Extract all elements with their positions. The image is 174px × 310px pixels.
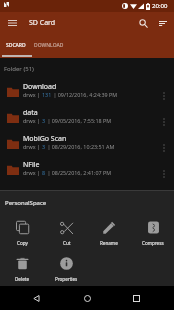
staticText: 3 xyxy=(42,143,46,150)
staticText: Copy xyxy=(17,240,28,246)
button[interactable]: Search xyxy=(134,14,152,32)
staticText: | 09/12/2016, 4:24:39 PM xyxy=(52,91,118,98)
staticText: Properties xyxy=(55,276,78,282)
staticText: Delete xyxy=(15,276,29,282)
button[interactable]: Copy xyxy=(0,221,44,253)
button[interactable]: Open navigation drawer xyxy=(3,14,21,32)
staticText: Download xyxy=(23,82,57,92)
button[interactable]: Recent apps xyxy=(126,288,146,308)
staticText: drwx | xyxy=(23,169,42,176)
staticText: Compress xyxy=(142,240,164,246)
button[interactable]: More options xyxy=(157,114,170,129)
staticText: SD Card xyxy=(29,18,56,28)
staticText: 131 xyxy=(42,91,52,98)
staticText: SDCARD xyxy=(6,42,26,49)
button[interactable]: Sort xyxy=(154,14,172,32)
button[interactable]: More options xyxy=(157,88,170,103)
button[interactable]: Cut xyxy=(44,221,88,253)
button[interactable]: Home xyxy=(77,288,97,308)
button[interactable]: More options xyxy=(157,166,170,181)
staticText: | 09/05/2016, 7:55:18 PM xyxy=(46,117,112,124)
button[interactable]: Properties xyxy=(44,257,88,289)
button[interactable]: MobiGo Scan xyxy=(0,131,174,157)
staticText: PersonalSpace xyxy=(5,199,47,207)
button[interactable]: NFile xyxy=(0,157,174,183)
staticText: | 08/25/2016, 2:41:07 PM xyxy=(46,169,112,176)
staticText: Rename xyxy=(100,240,118,246)
staticText: data xyxy=(23,108,38,118)
button[interactable]: Delete xyxy=(0,257,44,289)
button[interactable]: Download xyxy=(0,79,174,105)
button[interactable]: More options xyxy=(157,140,170,155)
staticText: NFile xyxy=(23,160,40,170)
staticText: drwx | xyxy=(23,143,42,150)
staticText: | 08/29/2016, 10:23:51 AM xyxy=(46,143,115,150)
staticText: drwx | xyxy=(23,91,42,98)
staticText: 3 xyxy=(42,117,46,124)
staticText: Cut xyxy=(63,240,71,246)
staticText: Folder (51) xyxy=(4,65,34,73)
staticText: DOWNLOAD xyxy=(34,42,64,49)
button[interactable]: SDCARD xyxy=(2,38,30,58)
button[interactable]: data xyxy=(0,105,174,131)
staticText: drwx | xyxy=(23,117,42,124)
staticText: MobiGo Scan xyxy=(23,134,67,144)
button[interactable]: Rename xyxy=(87,221,131,253)
staticText: 8 xyxy=(42,169,46,176)
button[interactable]: Back xyxy=(26,288,46,308)
button[interactable]: Compress xyxy=(131,221,174,253)
staticText: 20:00 xyxy=(152,2,168,10)
button[interactable]: DOWNLOAD xyxy=(32,38,66,58)
